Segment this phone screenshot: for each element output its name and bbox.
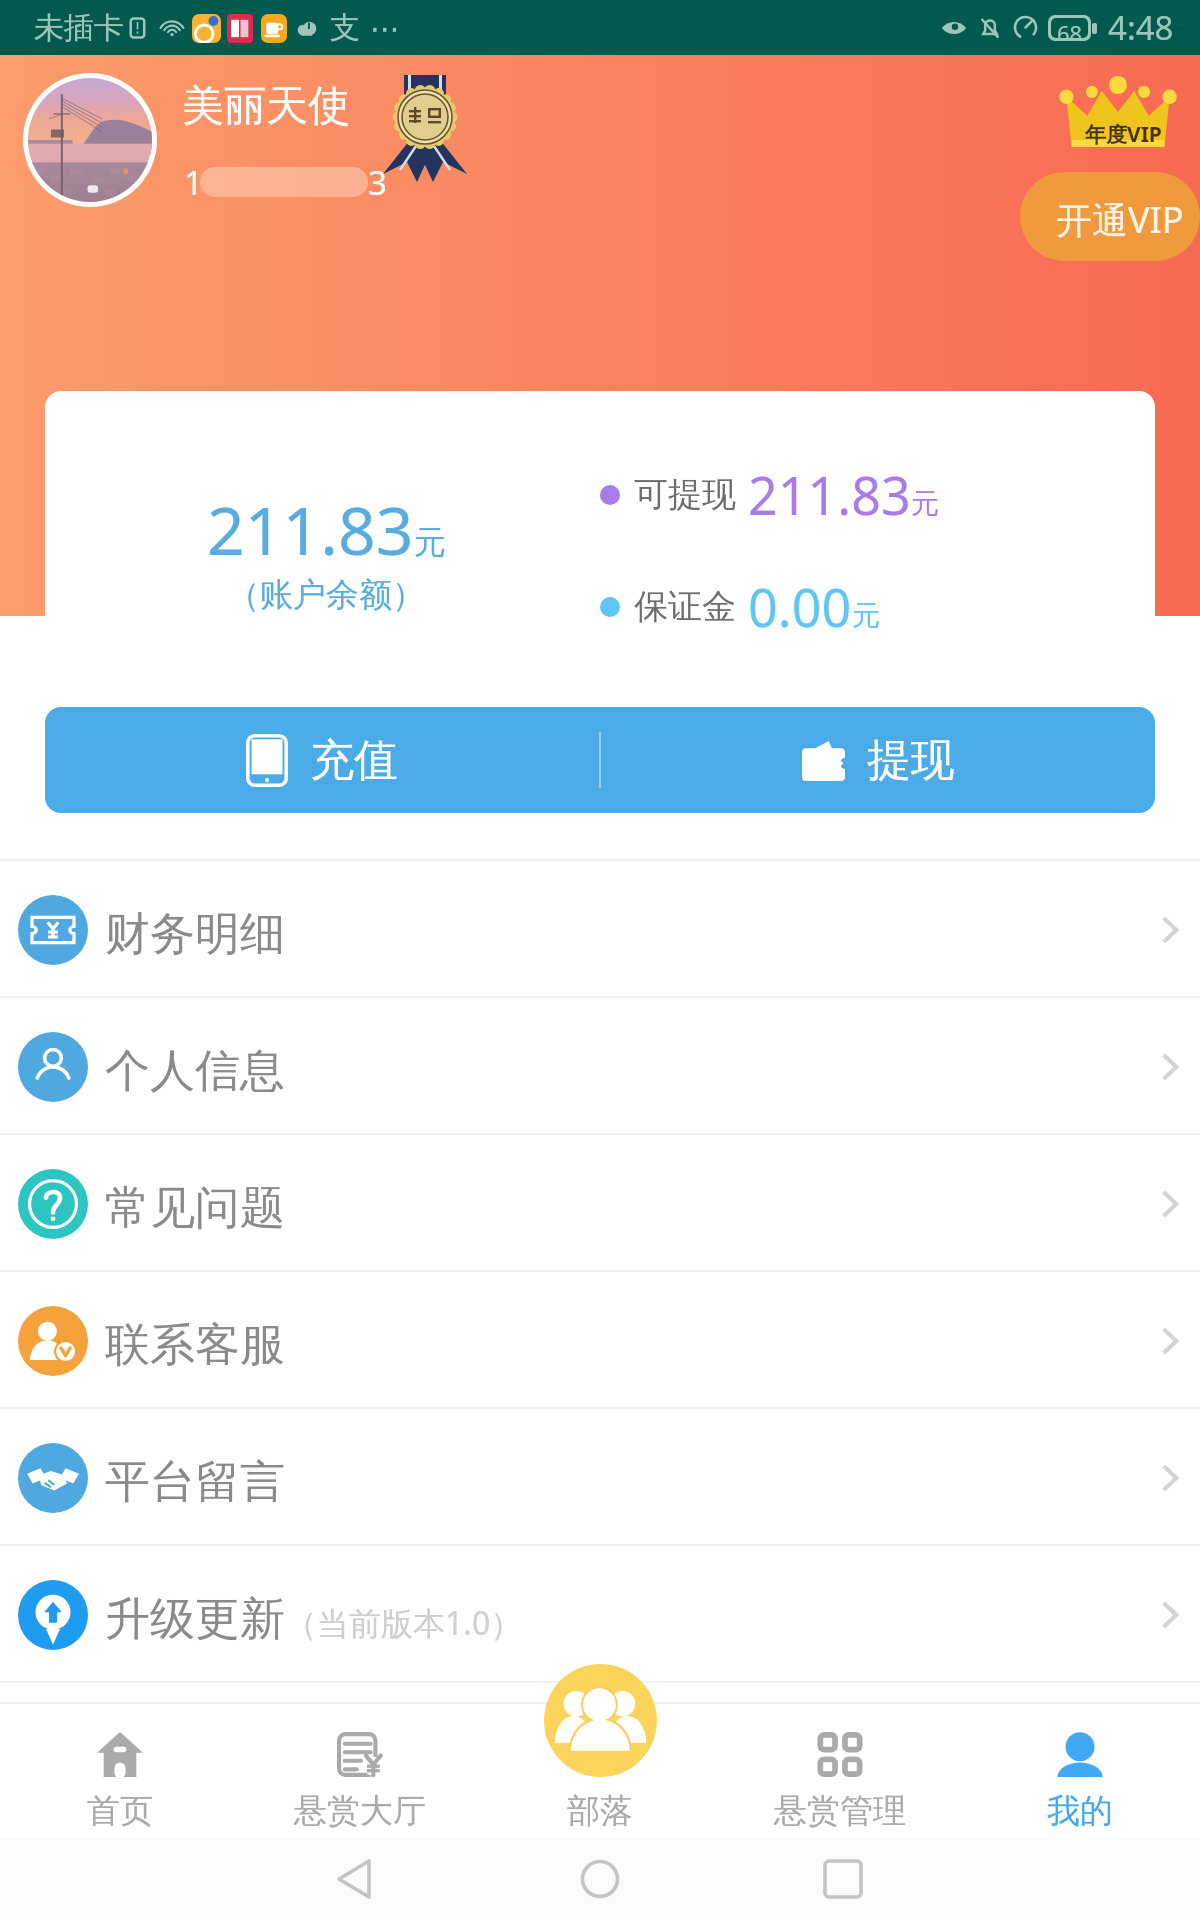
staticText: 元 (414, 522, 446, 562)
staticText: 我的 (1047, 1790, 1113, 1832)
staticText: 1 (184, 160, 203, 205)
staticText: 元 (911, 486, 939, 521)
staticText: 平台留言 (105, 1454, 285, 1511)
button[interactable]: 悬赏管理 (720, 1702, 960, 1838)
staticText: 年度VIP (1085, 120, 1162, 149)
staticText: ⋯ (370, 11, 400, 46)
button[interactable]: 联系客服 (0, 1272, 1200, 1409)
staticText: 211.83 (207, 484, 414, 574)
staticText: 211.83 (748, 459, 911, 530)
button[interactable]: 提现 (601, 707, 1155, 813)
staticText: 开通VIP (1056, 195, 1184, 244)
staticText: （当前版本1.0） (285, 1601, 523, 1645)
button[interactable]: 部落 (544, 1664, 657, 1777)
staticText: 个人信息 (105, 1043, 285, 1100)
button[interactable]: Back (294, 1838, 414, 1920)
staticText: 元 (852, 598, 880, 633)
button[interactable]: Home (540, 1838, 660, 1920)
staticText: 升级更新 (105, 1591, 285, 1648)
staticText: （账户余额） (227, 574, 425, 616)
button[interactable]: 开通VIP (1020, 172, 1200, 261)
staticText: 首页 (87, 1790, 153, 1832)
staticText: 未插卡 (34, 9, 124, 47)
staticText: 美丽天使 (182, 80, 350, 133)
button[interactable]: Recent apps (783, 1838, 903, 1920)
button[interactable]: Profile photo (28, 78, 152, 202)
staticText: 可提现 (634, 473, 736, 516)
button[interactable]: 充值 (45, 707, 599, 813)
staticText: 提现 (867, 733, 955, 788)
staticText: 联系客服 (105, 1317, 285, 1374)
button[interactable]: 平台留言 (0, 1409, 1200, 1546)
button[interactable]: 财务明细 (0, 861, 1200, 998)
staticText: 常见问题 (105, 1180, 285, 1237)
button[interactable]: 升级更新 (0, 1546, 1200, 1683)
staticText: 财务明细 (105, 906, 285, 963)
staticText: 3 (368, 160, 387, 205)
button[interactable]: 个人信息 (0, 998, 1200, 1135)
staticText: 68 (1057, 18, 1083, 38)
staticText: 悬赏管理 (774, 1790, 906, 1832)
staticText: 0.00 (748, 571, 852, 642)
button[interactable]: 悬赏大厅 (240, 1702, 480, 1838)
button[interactable]: 我的 (960, 1702, 1200, 1838)
staticText: 充值 (310, 733, 398, 788)
button[interactable]: 首页 (0, 1702, 240, 1838)
staticText: 4:48 (1108, 5, 1174, 50)
staticText: 保证金 (634, 585, 736, 628)
staticText: 部落 (567, 1790, 633, 1832)
button[interactable]: 常见问题 (0, 1135, 1200, 1272)
staticText: 悬赏大厅 (294, 1790, 426, 1832)
button[interactable]: 部落 (480, 1702, 720, 1838)
staticText: 支 (330, 9, 360, 47)
